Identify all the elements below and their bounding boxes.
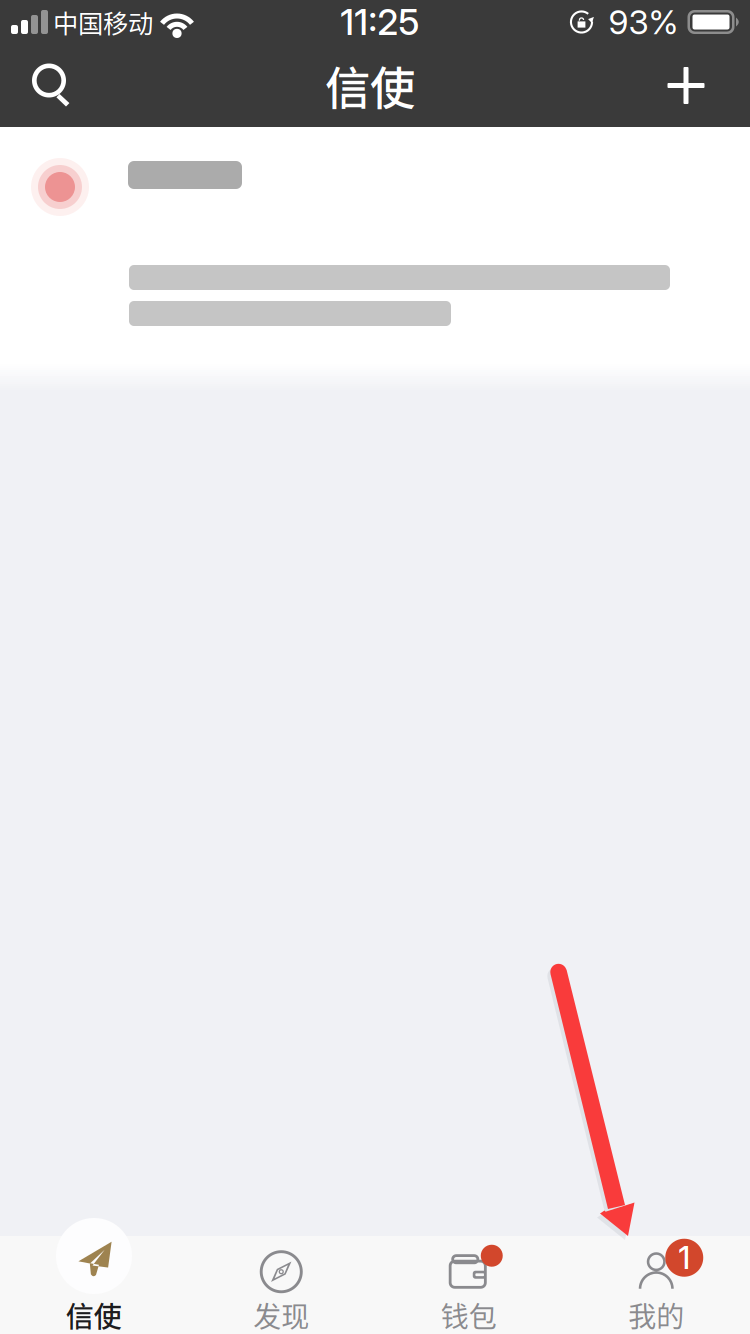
- button[interactable]: Search: [16, 52, 92, 118]
- staticText: 发现: [253, 1295, 309, 1334]
- staticText: 中国移动: [53, 4, 153, 40]
- button[interactable]: 发现: [187, 1236, 375, 1334]
- staticText: 信使: [66, 1295, 122, 1334]
- button[interactable]: [0, 127, 750, 390]
- staticText: 钱包: [441, 1295, 497, 1334]
- staticText: 11:25: [340, 0, 419, 44]
- staticText: 93%: [608, 2, 678, 42]
- button[interactable]: 钱包: [375, 1236, 562, 1334]
- staticText: 信使: [325, 53, 415, 118]
- button[interactable]: 信使: [0, 1236, 187, 1334]
- button[interactable]: Compose: [648, 52, 724, 118]
- staticText: 我的: [628, 1295, 684, 1334]
- button[interactable]: 1: [562, 1236, 750, 1334]
- staticText: 1: [678, 1239, 690, 1276]
